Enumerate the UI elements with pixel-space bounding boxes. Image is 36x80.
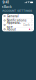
staticText: 9:41 bbox=[3, 0, 9, 4]
staticText: Notifications bbox=[7, 18, 27, 22]
button[interactable]: Back bbox=[1, 5, 13, 9]
button[interactable]: General bbox=[2, 14, 34, 18]
staticText: Back bbox=[4, 5, 12, 9]
button[interactable]: Notifications bbox=[2, 18, 34, 23]
button[interactable]: Appearance bbox=[2, 23, 34, 27]
staticText: Dark bbox=[23, 23, 30, 27]
staticText: ACCOUNT SETTINGS bbox=[2, 9, 32, 12]
staticText: General bbox=[7, 14, 19, 18]
button[interactable]: About bbox=[2, 27, 34, 31]
staticText: About bbox=[7, 27, 16, 31]
staticText: Appearance bbox=[7, 21, 21, 29]
